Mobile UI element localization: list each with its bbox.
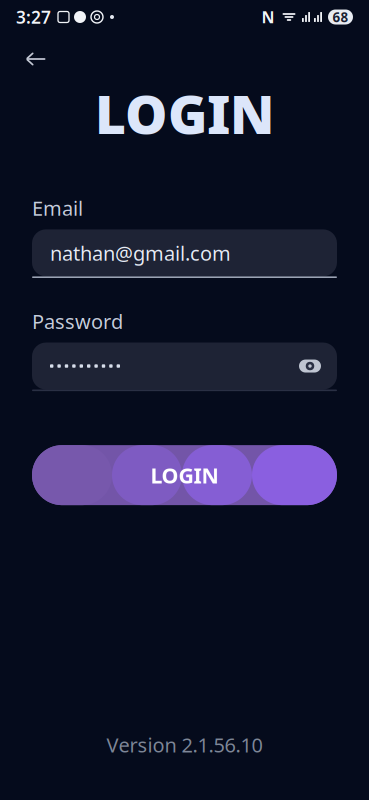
staticText: nathan@gmail.com <box>50 240 231 266</box>
button[interactable]: Show password <box>295 351 325 381</box>
staticText: Email <box>32 195 83 221</box>
staticText: LOGIN <box>95 78 274 149</box>
button[interactable]: LOGIN <box>0 445 369 505</box>
staticText: Password <box>32 308 123 335</box>
staticText: N <box>261 6 274 28</box>
button[interactable]: Back <box>16 42 56 76</box>
staticText: LOGIN <box>150 461 218 489</box>
staticText: Version 2.1.56.10 <box>106 731 262 758</box>
staticText: 68 <box>332 8 348 26</box>
staticText: 3:27 <box>16 5 51 28</box>
